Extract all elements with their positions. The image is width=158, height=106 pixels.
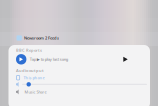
staticText: Audio output: [16, 68, 44, 73]
button[interactable]: Play: [121, 55, 130, 64]
button[interactable]: Play: [16, 54, 26, 64]
staticText: Tap ▶ to play last song: [30, 57, 68, 62]
staticText: Newsroom 2 Feeds: [24, 35, 59, 41]
staticText: BBC Reports: [16, 48, 42, 53]
staticText: Music Share: [25, 89, 47, 94]
staticText: This phone: [23, 75, 44, 80]
